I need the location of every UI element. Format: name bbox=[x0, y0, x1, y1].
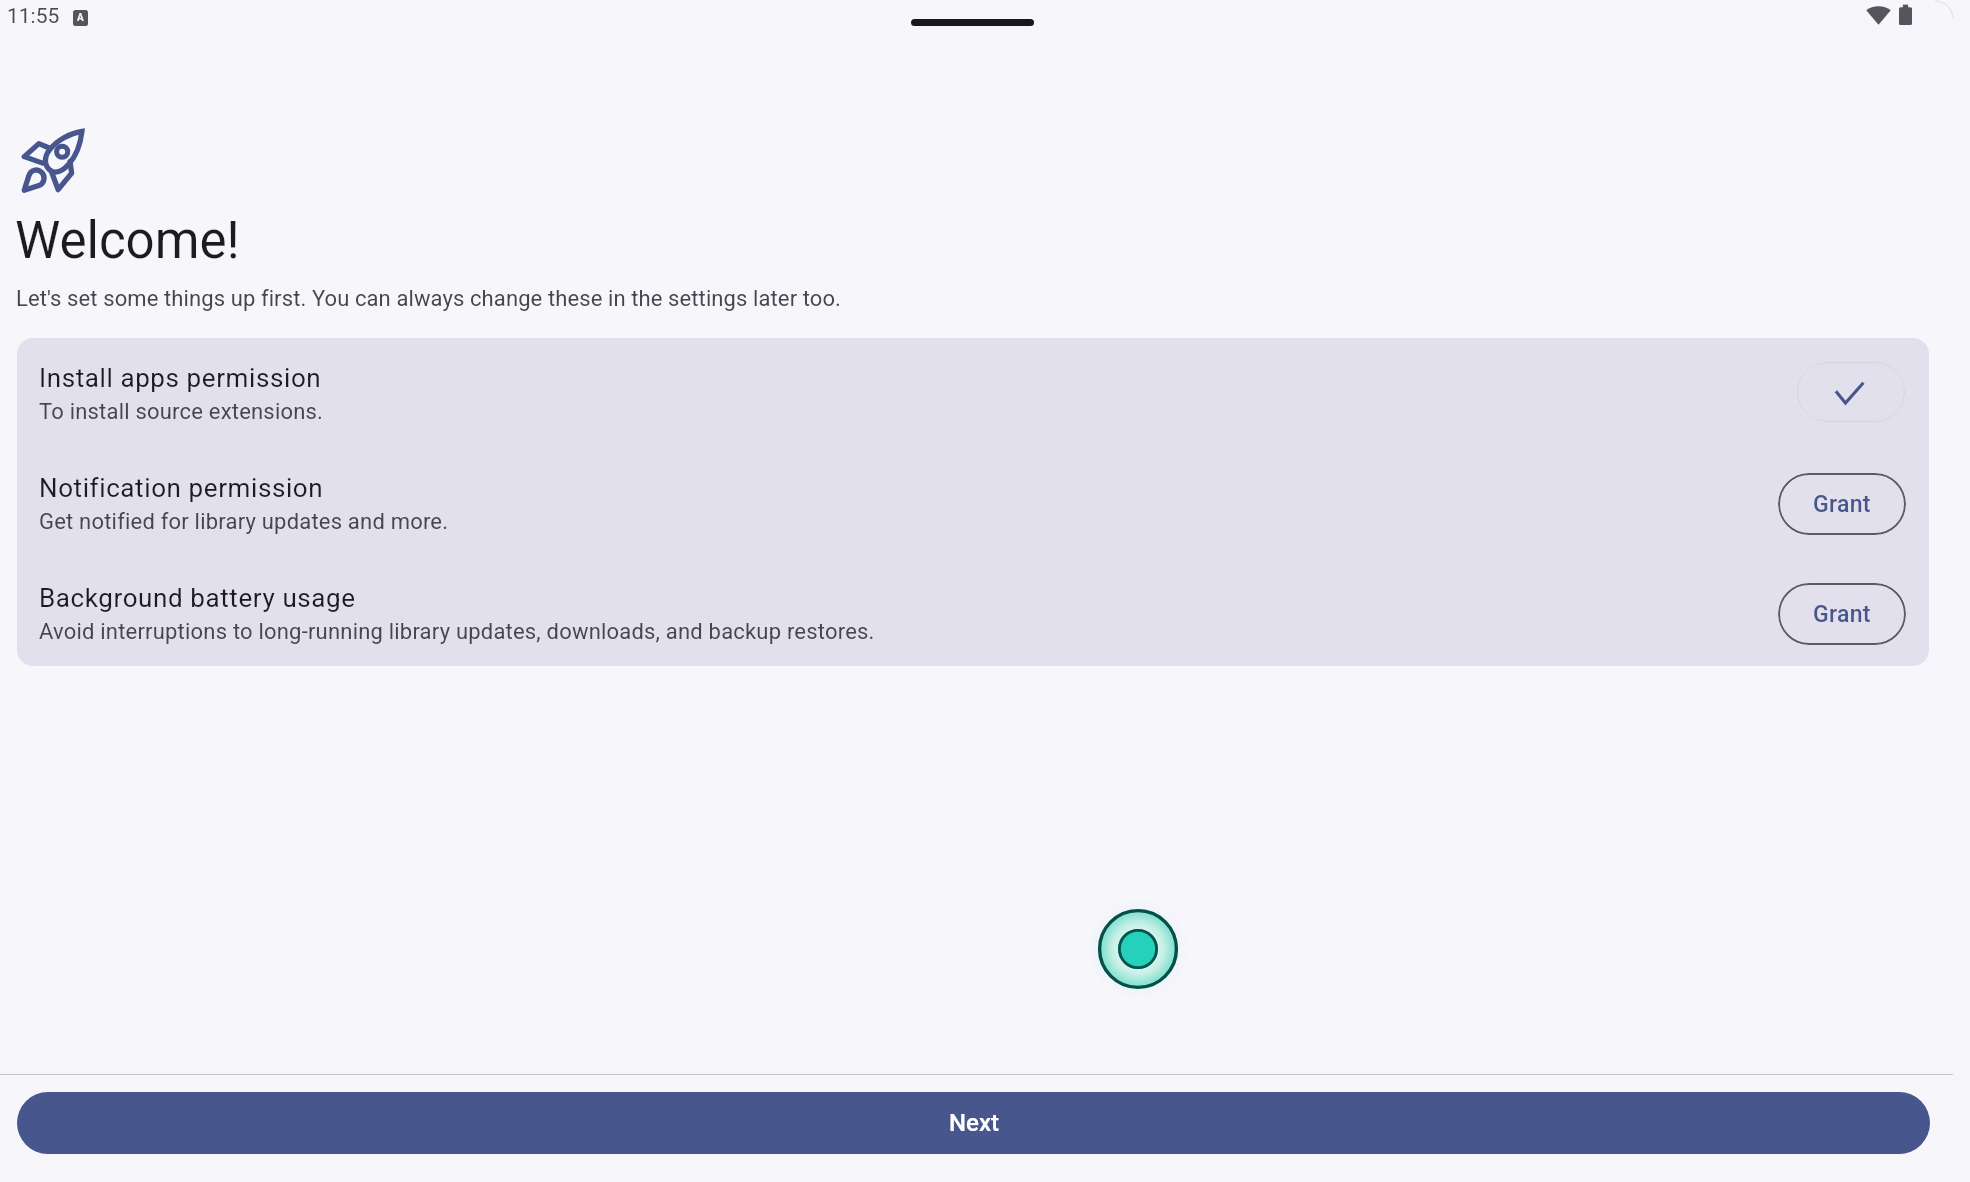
button[interactable]: Permission granted bbox=[1797, 362, 1905, 422]
staticText: 11:55 bbox=[7, 4, 60, 29]
staticText: A bbox=[77, 12, 84, 24]
staticText: Background battery usage bbox=[39, 583, 356, 613]
staticText: Next bbox=[949, 1109, 999, 1137]
staticText: To install source extensions. bbox=[39, 399, 324, 425]
staticText: Let's set some things up first. You can … bbox=[16, 286, 842, 312]
staticText: Get notified for library updates and mor… bbox=[39, 509, 449, 535]
button[interactable]: Grant bbox=[1778, 583, 1906, 645]
staticText: Install apps permission bbox=[39, 363, 322, 393]
button[interactable]: Next bbox=[17, 1092, 1930, 1154]
staticText: Grant bbox=[1813, 601, 1871, 628]
staticText: Grant bbox=[1813, 491, 1871, 518]
staticText: Notification permission bbox=[39, 473, 324, 503]
staticText: Welcome! bbox=[15, 211, 240, 271]
button[interactable]: Grant bbox=[1778, 473, 1906, 535]
staticText: Avoid interruptions to long-running libr… bbox=[39, 619, 875, 645]
